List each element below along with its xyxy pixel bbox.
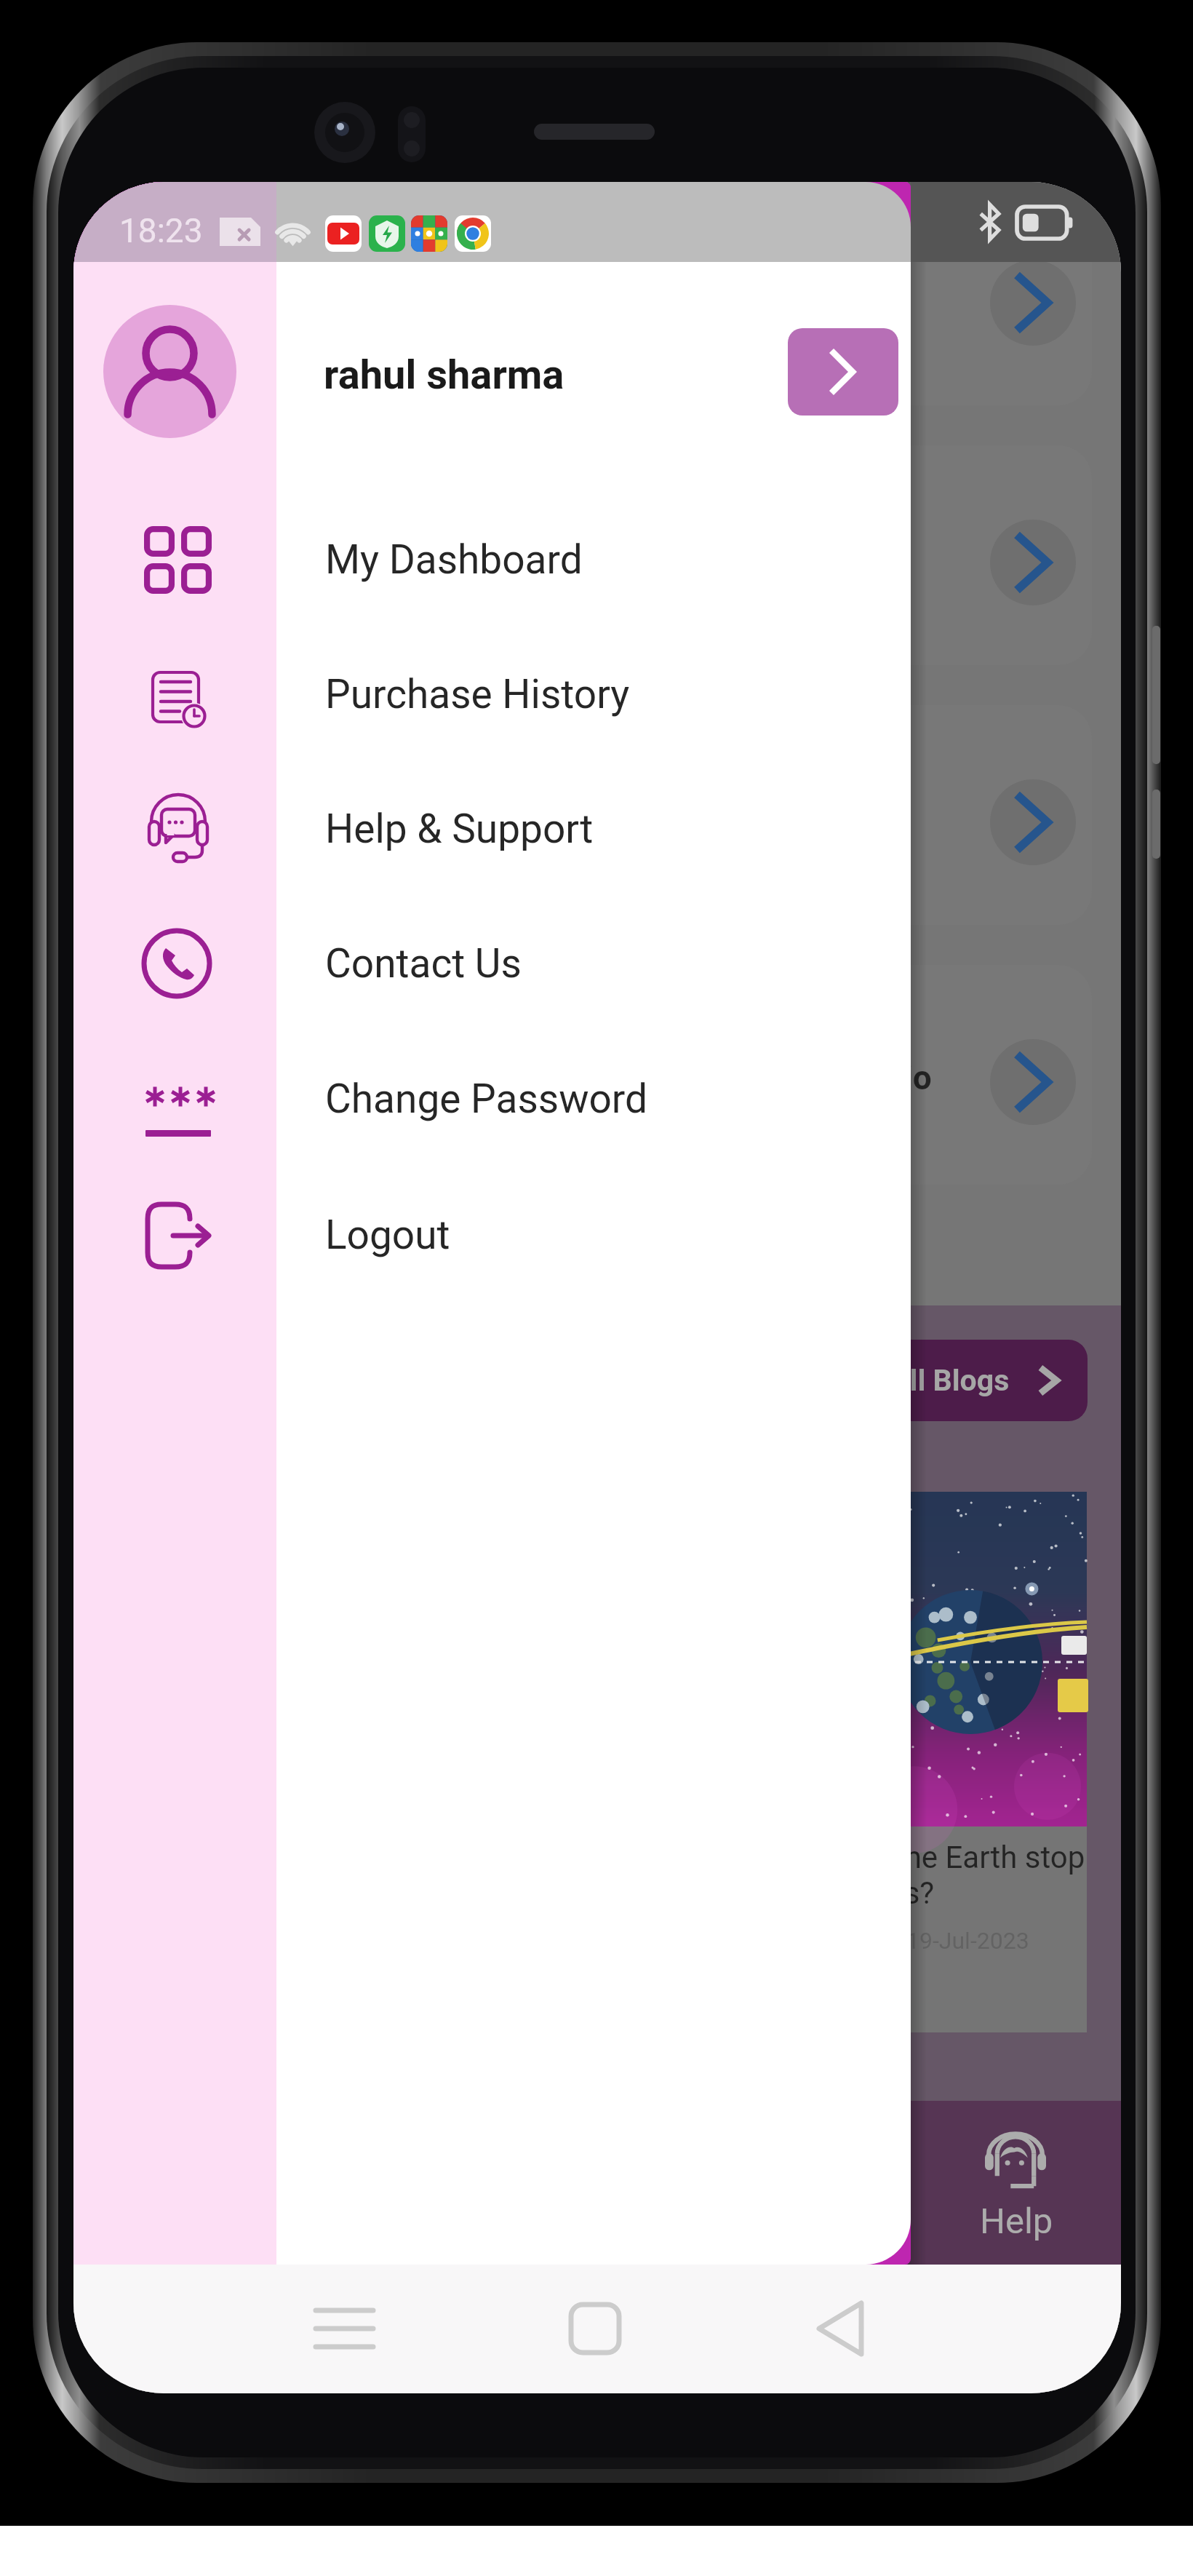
button[interactable]: Open profile [788, 328, 898, 416]
button[interactable] [100, 445, 1092, 665]
button[interactable] [100, 705, 1092, 925]
button[interactable]: Portfolio [100, 965, 1092, 1185]
staticText: Change Password [325, 1076, 648, 1122]
staticText: Help & Support [325, 806, 594, 852]
staticText: spins? [847, 1875, 1121, 1911]
staticText: rahul sharma [324, 351, 564, 399]
staticText: 19-Jul-2023 [906, 1927, 1121, 1955]
staticText: My Dashboard [325, 536, 583, 583]
staticText: When will the Earth stop [757, 1840, 1121, 1875]
staticText: 18:23 [119, 211, 203, 250]
button[interactable] [100, 186, 1092, 405]
staticText: Portfolio [799, 1058, 1090, 1097]
staticText: All Blogs [890, 1363, 1010, 1398]
staticText: Purchase History [325, 671, 630, 717]
button[interactable]: Help & Support [73, 762, 911, 896]
button[interactable]: My Dashboard [73, 493, 911, 627]
button[interactable]: Purchase History [73, 627, 911, 761]
button[interactable]: Change Password [73, 1032, 911, 1166]
button[interactable]: Contact Us [73, 897, 911, 1030]
staticText: Help [980, 2201, 1053, 2242]
button[interactable]: All Blogs [864, 1340, 1088, 1421]
staticText: Logout [325, 1212, 450, 1258]
staticText: Contact Us [325, 940, 522, 987]
button[interactable]: Logout [73, 1168, 911, 1302]
